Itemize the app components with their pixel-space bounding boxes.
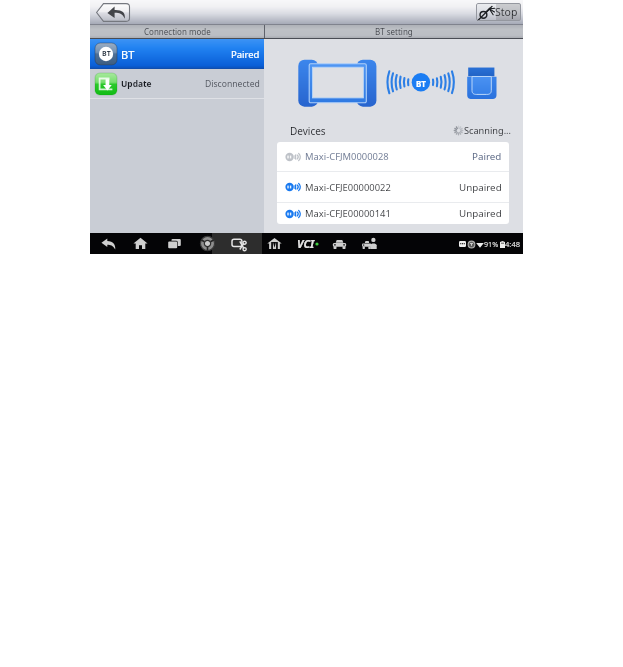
button[interactable]: Maxi-CFJM0000028 (277, 142, 509, 171)
staticText: VCI (297, 236, 315, 251)
staticText: Scanning... (464, 124, 512, 137)
staticText: Paired (231, 48, 260, 61)
staticText: Unpaired (459, 207, 502, 220)
button[interactable]: Home (132, 233, 148, 254)
button[interactable]: Stop (476, 3, 521, 21)
staticText: Disconnected (205, 78, 260, 90)
staticText: Devices (290, 124, 326, 138)
staticText: 91% (484, 239, 499, 249)
button[interactable]: Connection mode (90, 25, 264, 38)
button[interactable]: Customer (361, 233, 377, 254)
staticText: Stop (495, 5, 518, 19)
button[interactable]: Maxi Home (266, 233, 282, 254)
staticText: BT (121, 47, 135, 62)
staticText: BT (102, 49, 111, 59)
staticText: Paired (472, 150, 502, 163)
button[interactable]: Maxi-CFJE00000141 (277, 203, 509, 224)
button[interactable]: Recents (166, 233, 182, 254)
staticText: Maxi-CFJM0000028 (305, 150, 389, 163)
staticText: 4:48 (505, 239, 521, 249)
button[interactable]: Maxi-CFJE00000022 (277, 172, 509, 202)
button[interactable]: Browser (199, 233, 215, 254)
staticText: Update (121, 78, 152, 89)
staticText: BT setting (375, 26, 413, 37)
button[interactable]: Screenshot (212, 233, 262, 254)
staticText: Connection mode (144, 26, 211, 37)
staticText: Unpaired (459, 181, 502, 194)
staticText: Maxi-CFJE00000141 (305, 207, 391, 220)
button[interactable]: BT setting (265, 25, 523, 38)
staticText: Maxi-CFJE00000022 (305, 181, 391, 194)
button[interactable]: VCI (297, 233, 319, 254)
staticText: BT (416, 78, 426, 89)
button[interactable]: Back (100, 233, 116, 254)
button[interactable]: Update (90, 69, 264, 98)
button[interactable]: Back (96, 3, 130, 22)
button[interactable]: Vehicle (331, 233, 347, 254)
button[interactable]: BT (90, 39, 264, 69)
